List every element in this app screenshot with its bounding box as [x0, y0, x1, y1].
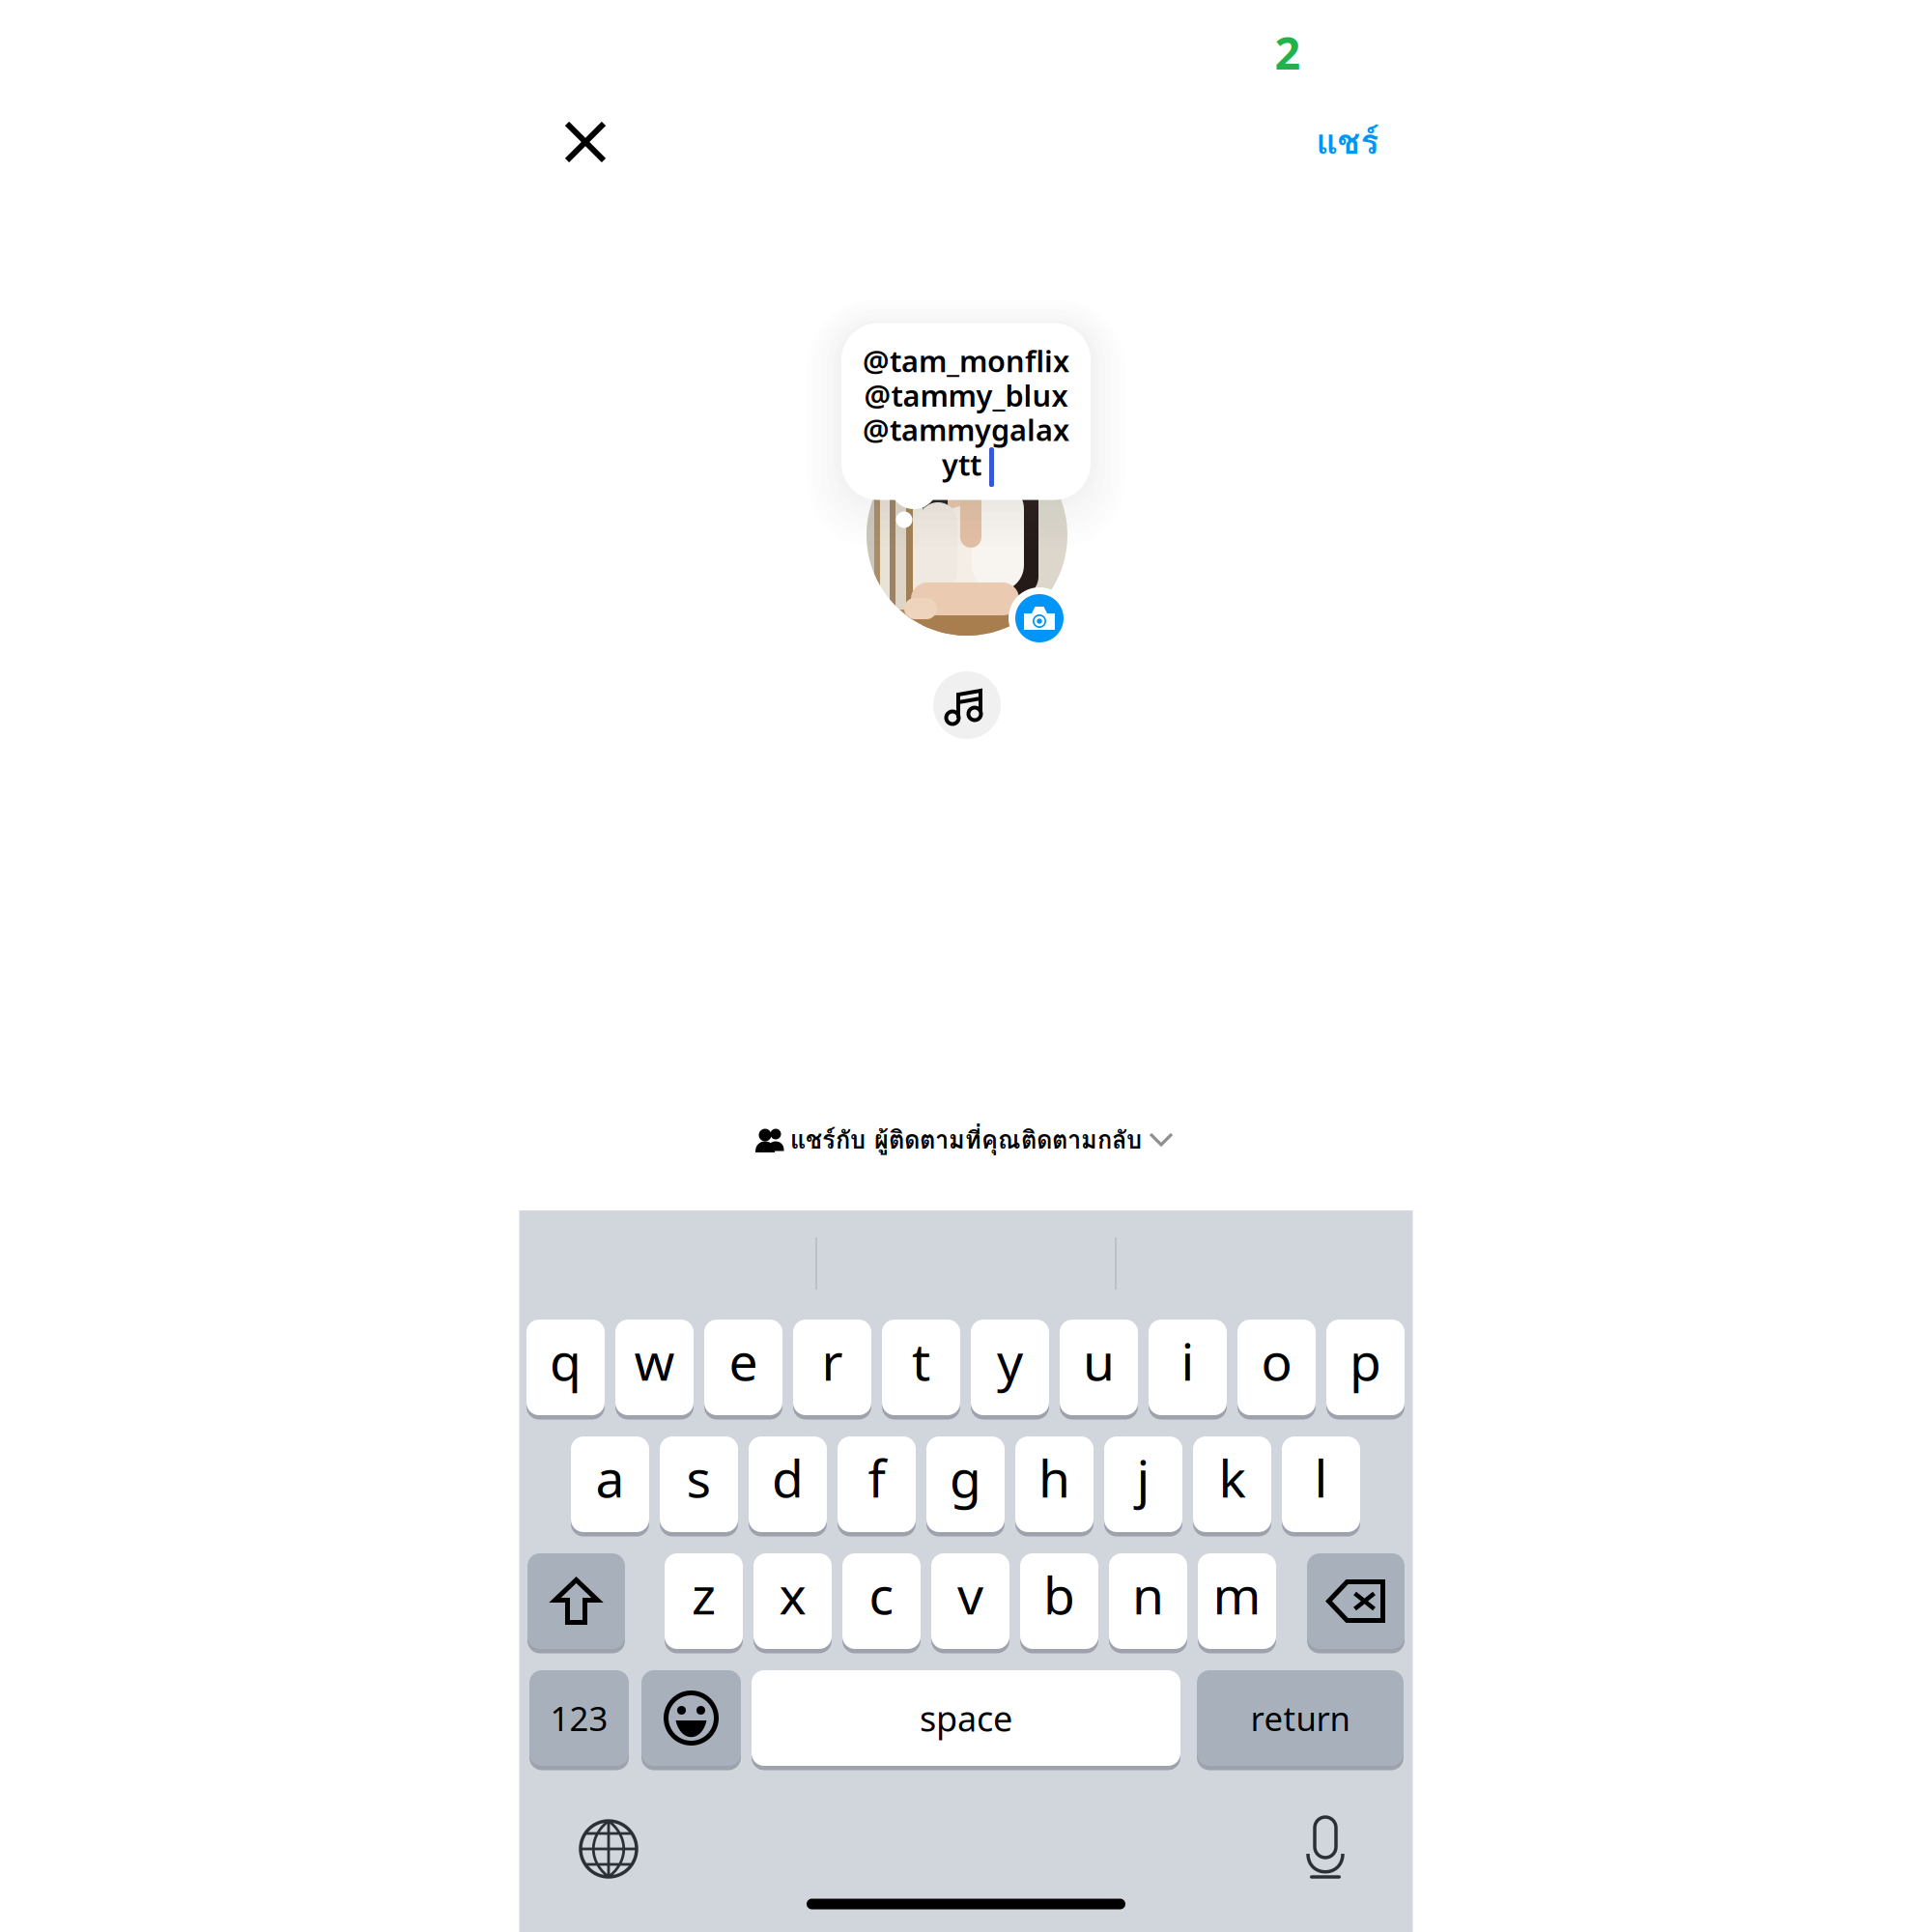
button[interactable]: t: [882, 1320, 960, 1418]
staticText: p: [1350, 1326, 1381, 1395]
button[interactable]: e: [704, 1320, 782, 1418]
button[interactable]: Change photo: [1009, 587, 1070, 649]
staticText: แชร์: [1316, 116, 1379, 168]
button[interactable]: c: [842, 1553, 921, 1652]
staticText: 123: [550, 1696, 608, 1740]
button[interactable]: แชร์กับ ผู้ติดตามที่คุณติดตามกลับ: [741, 1107, 1187, 1172]
button[interactable]: i: [1149, 1320, 1227, 1418]
staticText: n: [1132, 1560, 1164, 1629]
staticText: a: [596, 1443, 625, 1512]
staticText: u: [1083, 1326, 1115, 1395]
button[interactable]: p: [1326, 1320, 1405, 1418]
button[interactable]: q: [526, 1320, 605, 1418]
button[interactable]: b: [1020, 1553, 1098, 1652]
staticText: q: [550, 1326, 582, 1395]
staticText: m: [1213, 1560, 1261, 1629]
staticText: j: [1136, 1443, 1150, 1512]
staticText: h: [1038, 1443, 1070, 1512]
button[interactable]: Delete: [1307, 1553, 1405, 1652]
button[interactable]: Next keyboard: [579, 1819, 639, 1879]
button[interactable]: r: [793, 1320, 871, 1418]
button[interactable]: z: [665, 1553, 743, 1652]
button[interactable]: u: [1060, 1320, 1138, 1418]
staticText: d: [772, 1443, 804, 1512]
staticText: 2: [1275, 22, 1301, 82]
staticText: l: [1314, 1443, 1328, 1512]
button[interactable]: Shift: [527, 1553, 625, 1652]
button[interactable]: g: [926, 1436, 1005, 1535]
staticText: ytt: [942, 445, 981, 484]
button[interactable]: w: [615, 1320, 694, 1418]
staticText: y: [997, 1326, 1023, 1395]
staticText: x: [779, 1560, 806, 1629]
staticText: o: [1261, 1326, 1292, 1395]
staticText: space: [920, 1695, 1012, 1741]
button[interactable]: y: [971, 1320, 1049, 1418]
button[interactable]: space: [752, 1670, 1180, 1769]
staticText: @tammy_blux: [864, 375, 1068, 415]
button[interactable]: Emoji: [641, 1670, 741, 1769]
button[interactable]: Add music: [933, 671, 1001, 739]
staticText: c: [869, 1560, 894, 1629]
staticText: i: [1181, 1326, 1194, 1395]
staticText: แชร์กับ ผู้ติดตามที่คุณติดตามกลับ: [790, 1121, 1142, 1159]
staticText: f: [868, 1443, 885, 1512]
staticText: r: [822, 1326, 843, 1395]
staticText: t: [912, 1326, 930, 1395]
button[interactable]: d: [749, 1436, 827, 1535]
staticText: v: [957, 1560, 983, 1629]
staticText: k: [1219, 1443, 1246, 1512]
button[interactable]: k: [1193, 1436, 1271, 1535]
button[interactable]: แชร์: [1297, 97, 1398, 187]
staticText: w: [634, 1326, 675, 1395]
button[interactable]: Close: [539, 96, 632, 188]
button[interactable]: h: [1015, 1436, 1094, 1535]
button[interactable]: s: [660, 1436, 738, 1535]
button[interactable]: o: [1237, 1320, 1316, 1418]
staticText: b: [1043, 1560, 1075, 1629]
button[interactable]: return: [1197, 1670, 1404, 1769]
button[interactable]: Dictation: [1304, 1815, 1347, 1883]
staticText: @tammygalax: [863, 410, 1069, 449]
staticText: e: [729, 1326, 758, 1395]
button[interactable]: l: [1282, 1436, 1360, 1535]
button[interactable]: 123: [529, 1670, 629, 1769]
button[interactable]: m: [1198, 1553, 1276, 1652]
button[interactable]: j: [1104, 1436, 1182, 1535]
staticText: @tam_monflix: [863, 341, 1069, 380]
staticText: return: [1250, 1696, 1350, 1740]
staticText: s: [686, 1443, 711, 1512]
button[interactable]: f: [838, 1436, 916, 1535]
staticText: g: [950, 1443, 981, 1512]
button[interactable]: a: [571, 1436, 649, 1535]
button[interactable]: x: [753, 1553, 832, 1652]
button[interactable]: n: [1109, 1553, 1187, 1652]
button[interactable]: v: [931, 1553, 1009, 1652]
staticText: z: [692, 1560, 716, 1629]
